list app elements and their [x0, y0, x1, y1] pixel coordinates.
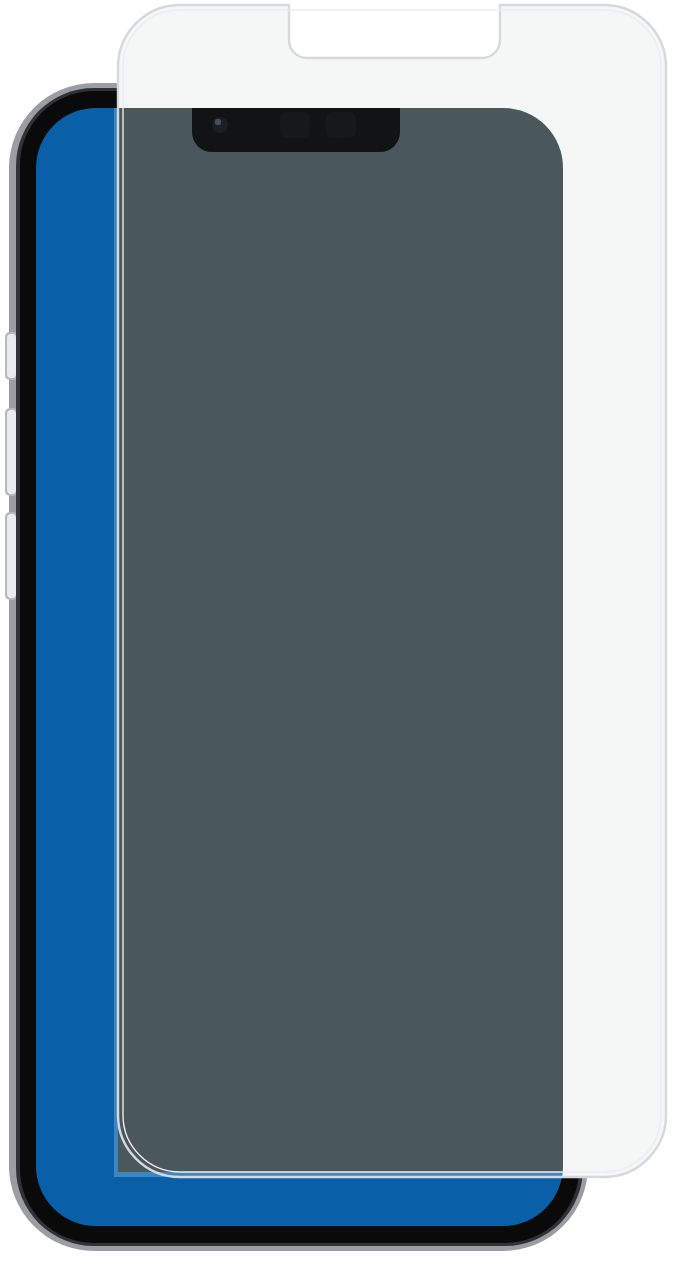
button[interactable]: Phone with tempered glass screen protect…: [0, 0, 679, 1279]
